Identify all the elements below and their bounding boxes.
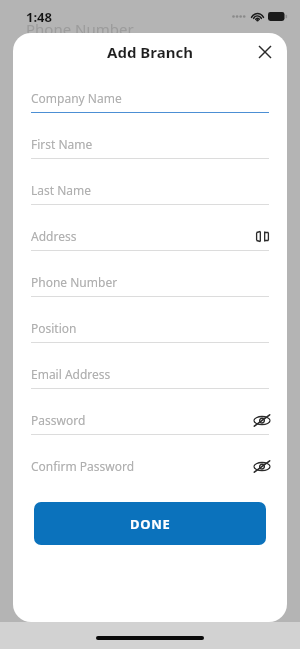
staticText: Email Address bbox=[31, 366, 111, 382]
staticText: DONE bbox=[130, 515, 171, 533]
button[interactable]: Company Name bbox=[13, 86, 287, 132]
staticText: Last Name bbox=[31, 182, 92, 198]
button[interactable]: Pick location on map bbox=[250, 224, 274, 248]
staticText: Confirm Password bbox=[31, 458, 135, 474]
staticText: Position bbox=[31, 320, 77, 336]
button[interactable]: Toggle password visibility bbox=[250, 408, 274, 432]
staticText: Phone Number bbox=[26, 19, 134, 39]
button[interactable]: Last Name bbox=[13, 178, 287, 224]
button[interactable]: Phone Number bbox=[13, 270, 287, 316]
button[interactable]: DONE bbox=[34, 502, 266, 545]
button[interactable]: Position bbox=[13, 316, 287, 362]
button[interactable]: Confirm Password bbox=[13, 454, 287, 500]
button[interactable]: Toggle password visibility bbox=[250, 454, 274, 478]
button[interactable]: Address bbox=[13, 224, 287, 270]
button[interactable]: Password bbox=[13, 408, 287, 454]
staticText: 1:48 bbox=[26, 8, 52, 26]
staticText: Password bbox=[31, 412, 86, 428]
staticText: Company Name bbox=[31, 90, 122, 106]
staticText: Add Branch bbox=[107, 42, 193, 62]
staticText: Address bbox=[31, 228, 77, 244]
button[interactable]: Email Address bbox=[13, 362, 287, 408]
staticText: First Name bbox=[31, 136, 93, 152]
button[interactable]: Close bbox=[251, 38, 279, 66]
button[interactable]: First Name bbox=[13, 132, 287, 178]
staticText: Phone Number bbox=[31, 274, 118, 290]
